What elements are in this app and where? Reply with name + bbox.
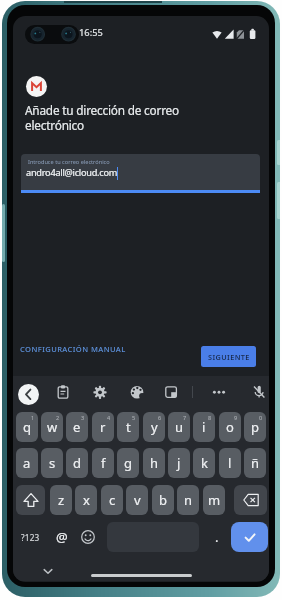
staticText: i xyxy=(202,418,206,436)
button[interactable] xyxy=(211,384,227,400)
staticText: g xyxy=(124,454,132,472)
staticText: w xyxy=(47,418,58,436)
staticText: u xyxy=(175,418,184,436)
staticText: z xyxy=(58,491,65,509)
staticText: 2 xyxy=(56,414,60,421)
staticText: 6 xyxy=(158,414,162,421)
button[interactable]: v xyxy=(126,485,148,515)
staticText: f xyxy=(101,454,106,472)
staticText: ?123 xyxy=(21,532,40,543)
staticText: 5 xyxy=(132,414,136,421)
staticText: ñ xyxy=(251,454,260,472)
staticText: t xyxy=(126,418,131,436)
button[interactable] xyxy=(251,384,267,400)
staticText: a xyxy=(23,454,31,472)
staticText: h xyxy=(150,454,159,472)
button[interactable]: h xyxy=(143,448,165,478)
button[interactable]: u xyxy=(168,412,190,442)
button[interactable]: Introduce tu correo electrónico xyxy=(21,154,260,191)
button[interactable]: e xyxy=(66,412,88,442)
staticText: 0 xyxy=(259,414,263,421)
staticText: 1 xyxy=(31,414,35,421)
button[interactable]: o xyxy=(219,412,241,442)
button[interactable]: g xyxy=(117,448,139,478)
button[interactable]: z xyxy=(50,485,72,515)
button[interactable]: a xyxy=(16,448,38,478)
button[interactable]: t xyxy=(117,412,139,442)
staticText: CONFIGURACIÓN MANUAL xyxy=(20,344,126,354)
button[interactable]: r xyxy=(92,412,114,442)
button[interactable] xyxy=(129,384,145,400)
button[interactable]: w xyxy=(41,412,63,442)
staticText: 8 xyxy=(208,414,212,421)
button[interactable]: i xyxy=(193,412,215,442)
button[interactable]: c xyxy=(101,485,123,515)
staticText: d xyxy=(73,454,81,472)
button[interactable]: k xyxy=(193,448,215,478)
staticText: 3 xyxy=(81,414,85,421)
staticText: 9 xyxy=(234,414,238,421)
staticText: m xyxy=(208,491,221,509)
button[interactable]: p xyxy=(244,412,266,442)
staticText: andro4all@icloud.com xyxy=(26,166,118,179)
staticText: @ xyxy=(56,528,68,546)
button[interactable]: b xyxy=(152,485,174,515)
button[interactable]: SIGUIENTE xyxy=(201,346,256,367)
staticText: n xyxy=(184,491,193,509)
staticText: . xyxy=(215,528,219,546)
staticText: x xyxy=(83,491,90,509)
button[interactable]: y xyxy=(143,412,165,442)
button[interactable]: ñ xyxy=(244,448,266,478)
button[interactable]: j xyxy=(168,448,190,478)
button[interactable] xyxy=(77,522,99,552)
button[interactable]: f xyxy=(92,448,114,478)
button[interactable] xyxy=(16,485,45,515)
staticText: l xyxy=(228,454,232,472)
staticText: SIGUIENTE xyxy=(208,352,250,362)
staticText: e xyxy=(73,418,81,436)
staticText: s xyxy=(49,454,56,472)
staticText: p xyxy=(251,418,259,436)
button[interactable]: ?123 xyxy=(16,522,45,552)
button[interactable]: l xyxy=(219,448,241,478)
staticText: r xyxy=(100,418,106,436)
button[interactable]: n xyxy=(177,485,199,515)
staticText: v xyxy=(134,491,141,509)
button[interactable]: . xyxy=(208,522,226,552)
staticText: c xyxy=(109,491,116,509)
button[interactable] xyxy=(55,384,71,400)
button[interactable]: CONFIGURACIÓN MANUAL xyxy=(17,341,129,357)
staticText: b xyxy=(159,491,167,509)
button[interactable] xyxy=(163,384,179,400)
button[interactable]: m xyxy=(203,485,225,515)
staticText: q xyxy=(23,418,31,436)
staticText: 16:55 xyxy=(79,26,103,39)
staticText: o xyxy=(226,418,234,436)
staticText: Añade tu dirección de correo electrónico xyxy=(25,102,179,134)
button[interactable] xyxy=(92,384,108,400)
staticText: Introduce tu correo electrónico xyxy=(28,158,110,166)
button[interactable] xyxy=(18,384,39,405)
staticText: j xyxy=(177,454,181,472)
button[interactable] xyxy=(231,522,268,552)
staticText: y xyxy=(151,418,158,436)
staticText: k xyxy=(201,454,208,472)
button[interactable]: x xyxy=(75,485,97,515)
button[interactable]: s xyxy=(41,448,63,478)
button[interactable] xyxy=(234,485,267,515)
button[interactable]: @ xyxy=(51,522,73,552)
staticText: 4 xyxy=(107,414,111,421)
staticText: 7 xyxy=(183,414,187,421)
button[interactable]: q xyxy=(16,412,38,442)
button[interactable]: d xyxy=(66,448,88,478)
